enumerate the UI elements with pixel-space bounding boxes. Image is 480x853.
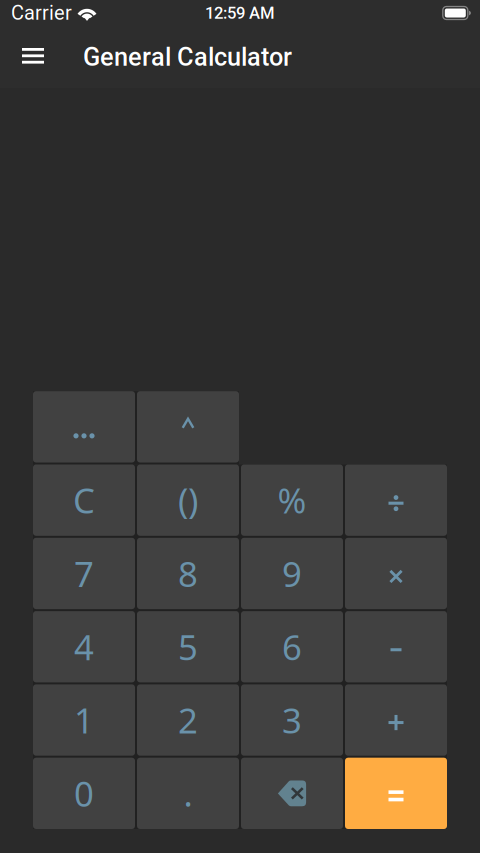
button[interactable]: 7 (33, 538, 135, 609)
staticText: 5 (178, 624, 198, 670)
button[interactable] (345, 464, 447, 536)
staticText: General Calculator (83, 42, 292, 72)
button[interactable] (33, 391, 135, 462)
button[interactable] (241, 758, 343, 829)
button[interactable] (345, 538, 447, 609)
button[interactable]: 3 (241, 684, 343, 756)
staticText: Carrier (11, 1, 72, 25)
button[interactable] (345, 684, 447, 756)
button[interactable]: 0 (33, 758, 135, 829)
button[interactable] (345, 758, 447, 829)
staticText: 0 (74, 770, 94, 816)
button[interactable]: 4 (33, 611, 135, 682)
button[interactable]: 5 (137, 611, 239, 682)
button[interactable]: 9 (241, 538, 343, 609)
staticText: 1 (74, 697, 94, 743)
staticText: 12:59 AM (205, 3, 275, 23)
button[interactable]: () (137, 464, 239, 536)
staticText: . (183, 770, 192, 816)
staticText: 9 (282, 550, 302, 596)
staticText: 7 (74, 550, 94, 596)
staticText: 6 (282, 624, 302, 670)
staticText: 2 (178, 697, 198, 743)
staticText: 4 (74, 624, 94, 670)
button[interactable]: 2 (137, 684, 239, 756)
staticText: 3 (282, 697, 302, 743)
button[interactable]: 1 (33, 684, 135, 756)
button[interactable]: . (137, 758, 239, 829)
button[interactable] (345, 611, 447, 682)
button[interactable]: 6 (241, 611, 343, 682)
button[interactable] (137, 391, 239, 462)
button[interactable]: C (33, 464, 135, 536)
staticText: % (277, 477, 306, 523)
staticText: 8 (178, 550, 198, 596)
button[interactable]: 8 (137, 538, 239, 609)
staticText: () (178, 477, 198, 523)
button[interactable]: % (241, 464, 343, 536)
button[interactable]: Menu (11, 35, 55, 79)
staticText: C (73, 477, 95, 523)
